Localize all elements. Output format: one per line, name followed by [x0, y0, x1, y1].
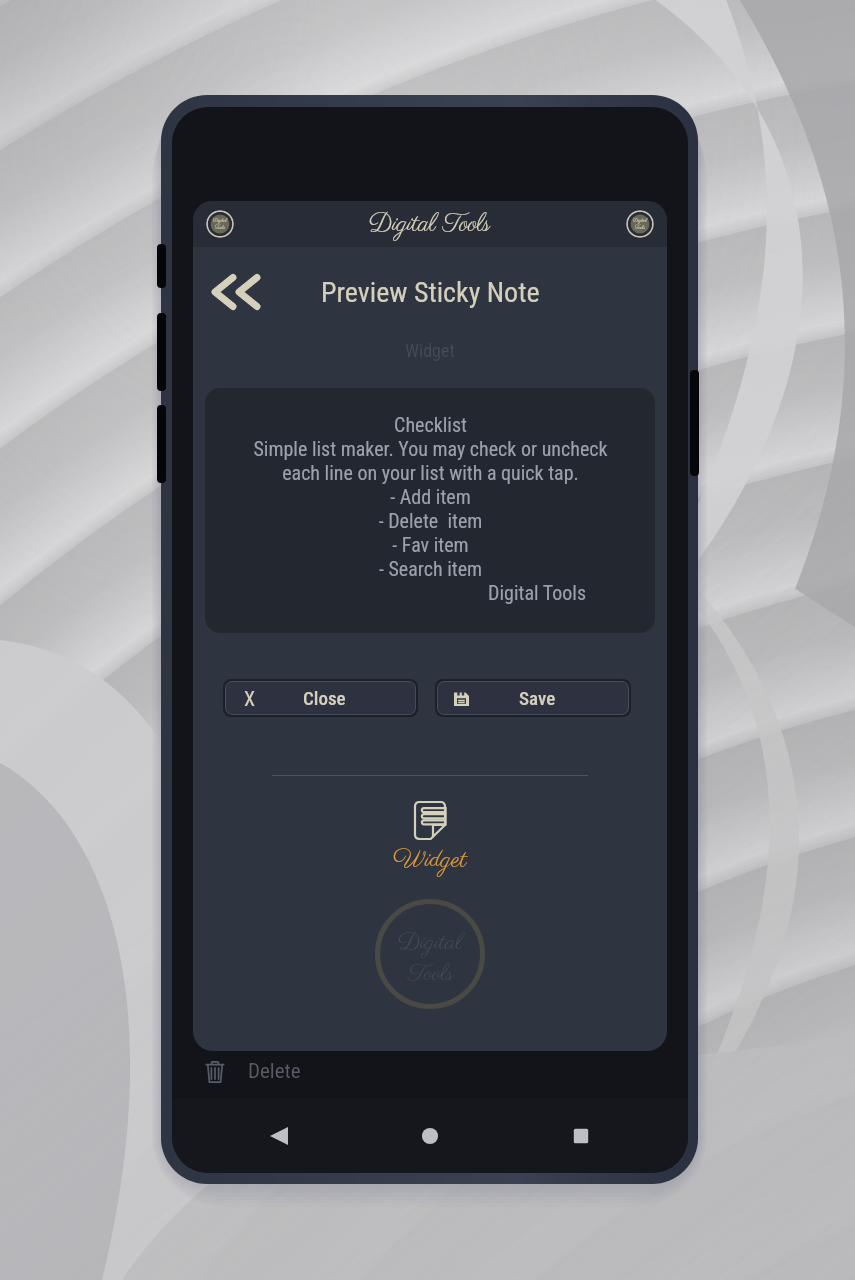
button[interactable]: Save	[437, 681, 629, 715]
staticText: Digital	[213, 217, 227, 224]
staticText: Digital Tools	[213, 581, 586, 604]
button[interactable]: Recents	[558, 1113, 604, 1159]
button[interactable]: Checklist Simple list maker. You may che…	[205, 388, 655, 633]
staticText: Digital Tools	[369, 208, 491, 241]
staticText: Checklist Simple list maker. You may che…	[253, 413, 608, 581]
button[interactable]: Back	[256, 1113, 302, 1159]
button[interactable]: Delete	[172, 1051, 688, 1091]
staticText: Digital	[633, 217, 647, 224]
button[interactable]: Back	[211, 272, 261, 312]
staticText: Tools	[215, 224, 225, 231]
button[interactable]: Widget	[408, 798, 452, 842]
staticText: Save	[519, 687, 556, 709]
button[interactable]: Digital Tools	[626, 210, 654, 238]
staticText: Tools	[635, 224, 645, 231]
staticText: Delete	[248, 1059, 301, 1084]
staticText: Digital	[398, 927, 463, 958]
staticText: Widget	[193, 340, 667, 361]
button[interactable]: Digital Tools	[206, 210, 234, 238]
staticText: X	[244, 687, 256, 710]
button[interactable]: Home	[407, 1113, 453, 1159]
staticText: Preview Sticky Note	[321, 276, 540, 309]
staticText: Tools	[408, 958, 454, 989]
button[interactable]: Close	[225, 681, 416, 715]
staticText: Close	[303, 687, 346, 709]
staticText: Widget	[393, 844, 467, 877]
